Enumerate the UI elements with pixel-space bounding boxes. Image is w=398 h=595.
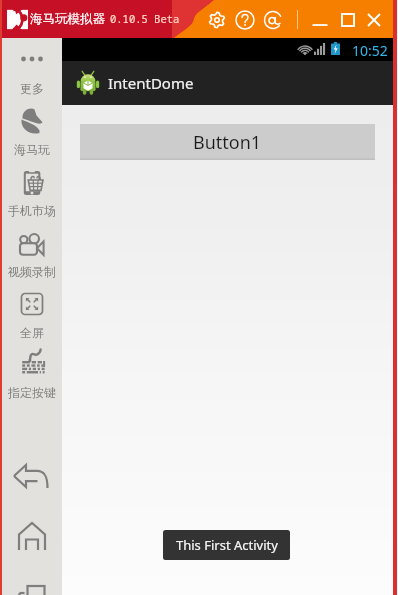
staticText: This First Activity [176, 536, 278, 554]
button[interactable]: Button1 [80, 124, 375, 160]
button[interactable]: More [2, 39, 62, 89]
button[interactable]: Fullscreen [2, 284, 62, 334]
button[interactable]: Settings [203, 6, 231, 34]
staticText: 手机市场 [2, 203, 62, 218]
button[interactable]: Key mapping [2, 344, 62, 394]
button[interactable]: Help [231, 6, 259, 34]
button[interactable]: Record video [2, 224, 62, 274]
staticText: 更多 [2, 81, 62, 96]
button[interactable]: Haima [2, 101, 62, 151]
staticText: 视频录制 [2, 264, 62, 279]
button[interactable]: Recents [2, 577, 62, 595]
staticText: 0.10.5 Beta [110, 12, 180, 26]
button[interactable]: Email [259, 6, 287, 34]
button[interactable]: App market [2, 163, 62, 213]
staticText: 海马玩 [2, 142, 62, 157]
button[interactable]: Minimize [306, 6, 334, 34]
staticText: 全屏 [2, 325, 62, 340]
button[interactable]: Home [2, 517, 62, 557]
staticText: Button1 [193, 130, 262, 155]
button[interactable]: Back [2, 456, 62, 496]
staticText: IntentDome [108, 73, 194, 93]
staticText: 海马玩模拟器 [30, 11, 105, 27]
button[interactable]: Close [360, 6, 388, 34]
staticText: 10:52 [352, 41, 388, 60]
button[interactable]: Maximize [334, 6, 362, 34]
staticText: 指定按键 [2, 385, 62, 400]
